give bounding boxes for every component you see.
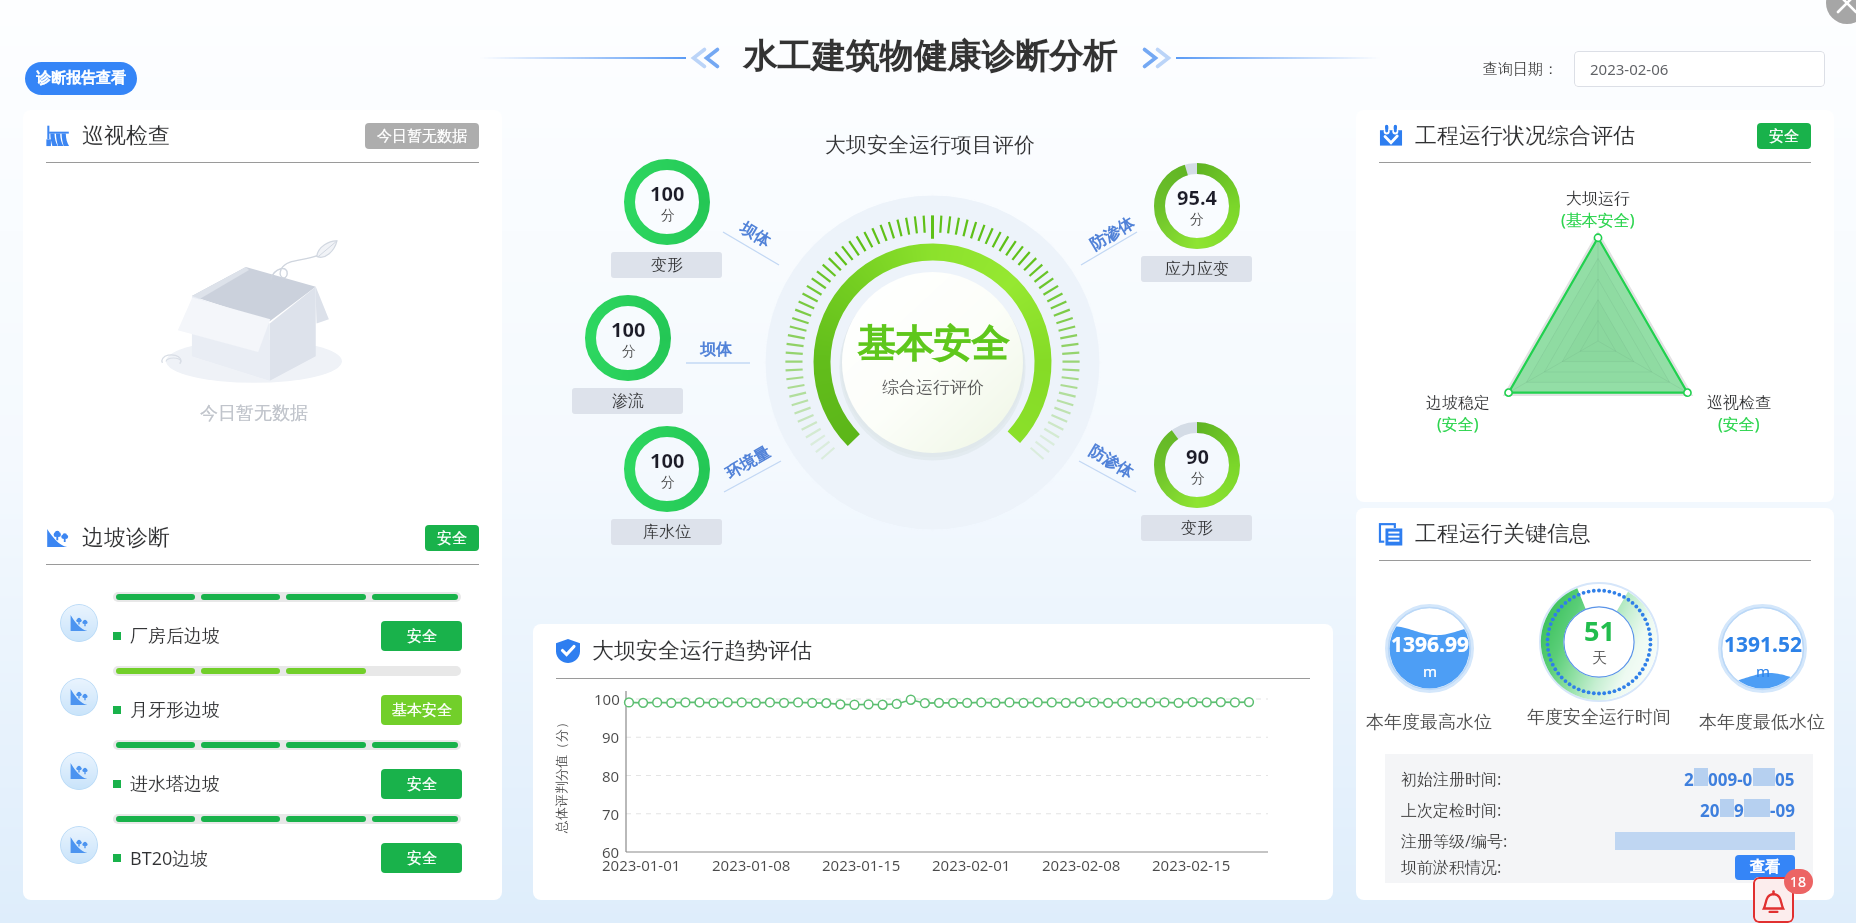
button[interactable]: 安全 [425,525,479,551]
staticText: 2023-02-06 [1590,59,1669,79]
staticText: 巡视检查 [1707,393,1771,413]
button[interactable]: 2023-02-06 [1574,51,1825,87]
staticText: 20 [1700,799,1720,822]
button[interactable]: 今日暂无数据 [365,123,479,149]
staticText: 2023-01-01 [602,855,681,875]
staticText: 安全 [437,529,467,548]
staticText: 坝体 [700,340,732,360]
staticText: 库水位 [643,522,691,542]
button[interactable]: Alerts [1753,877,1794,923]
staticText: 年度安全运行时间 [1527,706,1671,729]
staticText: 95.4 [1177,184,1217,211]
staticText: 1396.99 [1391,630,1469,659]
staticText: 2023-02-15 [1152,855,1231,875]
button[interactable]: BT20边坡 [23,809,502,883]
staticText: 查询日期： [1483,60,1558,79]
staticText: 18 [1790,872,1807,891]
button[interactable]: 安全 [1757,123,1811,149]
staticText: 工程运行关键信息 [1415,520,1591,548]
staticText: 2023-02-01 [932,855,1011,875]
staticText: 本年度最高水位 [1366,711,1492,734]
staticText: 80 [602,766,620,786]
staticText: BT20边坡 [130,846,209,871]
staticText: 大坝安全运行趋势评估 [592,637,812,665]
staticText: 分 [661,207,675,225]
staticText: 100 [611,316,646,343]
staticText: 100 [594,689,620,709]
staticText: 今日暂无数据 [377,127,467,146]
staticText: 大坝运行 [1566,189,1630,209]
button[interactable]: 安全 [381,843,462,873]
staticText: 90 [1186,443,1209,470]
staticText: (安全) [1718,413,1760,435]
staticText: (安全) [1437,413,1479,435]
staticText: 坝前淤积情况: [1401,856,1502,878]
staticText: m [1756,661,1771,681]
staticText: 边坡稳定 [1426,393,1490,413]
staticText: 2023-02-08 [1042,855,1121,875]
staticText: 2023-01-15 [822,855,901,875]
button[interactable]: 厂房后边坡 [23,587,502,661]
staticText: 分 [622,343,636,361]
staticText: 防渗体 [1085,441,1137,483]
staticText: 本年度最低水位 [1699,711,1825,734]
button[interactable]: 月牙形边坡 [23,661,502,735]
staticText: 今日暂无数据 [200,402,308,425]
staticText: 环境量 [722,442,774,484]
staticText: 变形 [651,255,683,275]
button[interactable]: 安全 [381,769,462,799]
staticText: 100 [650,447,685,474]
staticText: 厂房后边坡 [130,625,220,648]
staticText: 边坡诊断 [82,524,170,552]
staticText: 安全 [1769,127,1799,146]
staticText: 分 [661,474,675,492]
staticText: 注册等级/编号: [1401,830,1508,852]
staticText: 月牙形边坡 [130,699,220,722]
staticText: 70 [602,804,620,824]
staticText: 渗流 [612,391,644,411]
button[interactable]: 安全 [381,621,462,651]
button[interactable]: Close [1826,0,1856,24]
staticText: 安全 [407,627,437,646]
staticText: m [1423,661,1438,681]
staticText: 51 [1584,612,1615,649]
staticText: 坝体 [736,218,774,252]
staticText: 2 [1684,768,1694,791]
staticText: 变形 [1181,518,1213,538]
staticText: 上次定检时间: [1401,799,1502,821]
staticText: 60 [602,842,620,862]
staticText: 分 [1191,470,1205,488]
staticText: 大坝安全运行项目评价 [825,132,1035,158]
staticText: 巡视检查 [82,122,170,150]
staticText: 2023-01-08 [712,855,791,875]
staticText: 水工建筑物健康诊断分析 [743,35,1117,78]
staticText: 1391.52 [1724,630,1802,659]
staticText: 分 [1190,211,1204,229]
staticText: 9 [1734,799,1744,822]
staticText: 查看 [1750,858,1780,877]
staticText: 诊断报告查看 [36,69,126,88]
staticText: 天 [1592,649,1607,668]
staticText: 基本安全 [392,701,452,720]
staticText: 基本安全 [857,320,1009,368]
staticText: 工程运行状况综合评估 [1415,122,1635,150]
staticText: 综合运行评价 [882,377,984,398]
staticText: 进水塔边坡 [130,773,220,796]
staticText: -09 [1770,799,1795,822]
staticText: 90 [602,727,620,747]
button[interactable]: 查看 [1735,855,1795,880]
staticText: 05 [1775,768,1795,791]
staticText: 安全 [407,849,437,868]
button[interactable]: 诊断报告查看 [25,62,137,95]
staticText: (基本安全) [1561,209,1635,231]
staticText: 初始注册时间: [1401,768,1502,790]
staticText: 应力应变 [1165,259,1229,279]
staticText: 009-0 [1708,768,1753,791]
staticText: 防渗体 [1086,213,1138,255]
staticText: 100 [650,180,685,207]
staticText: 总体评判分值（分） [553,716,569,833]
button[interactable]: 基本安全 [381,695,462,725]
button[interactable]: 进水塔边坡 [23,735,502,809]
staticText: 安全 [407,775,437,794]
